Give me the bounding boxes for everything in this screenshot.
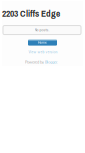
button[interactable]: View web version: [28, 50, 58, 55]
staticText: Powered by: [25, 60, 44, 64]
staticText: 2203 Cliffs Edge: [2, 7, 60, 20]
staticText: Blogger.: [45, 60, 58, 64]
staticText: No posts.: [34, 28, 49, 32]
staticText: View web version: [28, 50, 57, 54]
button[interactable]: Home: [28, 40, 57, 46]
staticText: Home: [38, 40, 47, 45]
button[interactable]: Powered by: [25, 60, 58, 65]
